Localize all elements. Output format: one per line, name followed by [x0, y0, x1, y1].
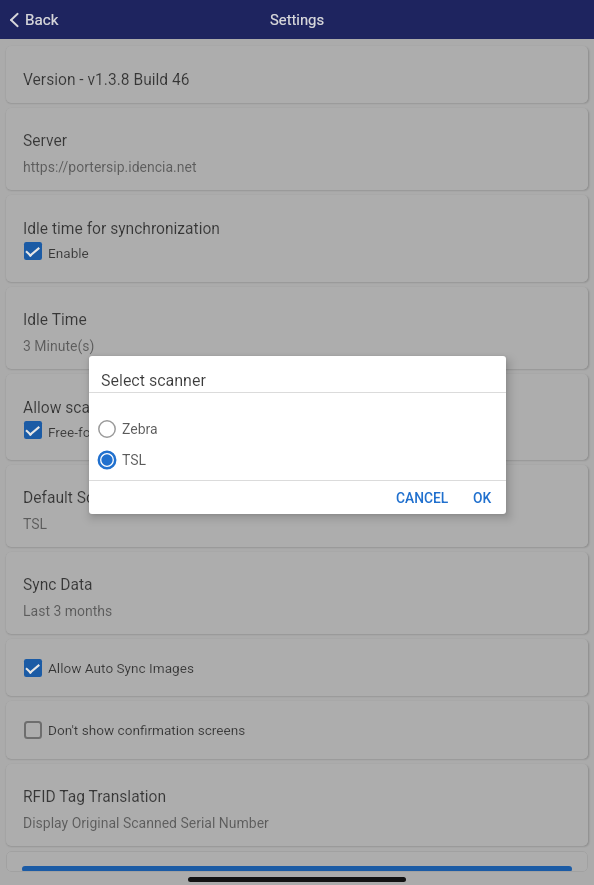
staticText: Display Original Scanned Serial Number	[23, 815, 269, 831]
button[interactable]: Checkbox	[6, 701, 588, 759]
staticText: OK	[473, 490, 492, 506]
staticText: Free-form scanning	[48, 424, 166, 440]
button[interactable]: Sync Data	[6, 552, 588, 634]
button[interactable]: Checkbox	[23, 242, 95, 260]
staticText: Sync Data	[23, 576, 93, 594]
button[interactable]: RFID Tag Translation	[6, 764, 588, 846]
button[interactable]: Checkbox	[23, 421, 172, 439]
button[interactable]: Idle time for synchronization	[6, 195, 588, 282]
button[interactable]: Checkbox	[6, 701, 588, 759]
staticText: Default Scanner	[23, 489, 134, 507]
other: Checkbox	[24, 421, 42, 439]
staticText: Allow scanning	[23, 399, 129, 417]
button[interactable]: Default Scanner	[6, 465, 588, 547]
button[interactable]: TSL	[89, 448, 506, 472]
staticText: CANCEL	[396, 490, 449, 506]
staticText: Idle time for synchronization	[23, 220, 220, 238]
button[interactable]: Zebra	[89, 417, 506, 441]
staticText: Enable	[48, 245, 89, 261]
button[interactable]: CANCEL	[388, 485, 457, 511]
staticText: Settings	[270, 11, 325, 28]
staticText: Select scanner	[101, 371, 206, 390]
staticText: Back	[25, 11, 59, 29]
button[interactable]: Checkbox	[6, 639, 588, 696]
button[interactable]: OK	[465, 485, 500, 511]
staticText: Zebra	[122, 421, 158, 437]
other: Checkbox	[24, 659, 42, 677]
button[interactable]	[22, 866, 572, 872]
staticText: https://portersip.idencia.net	[23, 159, 197, 175]
staticText: RFID Tag Translation	[23, 788, 167, 806]
button[interactable]: Back	[0, 0, 69, 39]
staticText: Server	[23, 132, 67, 150]
staticText: Idle Time	[23, 311, 87, 329]
button[interactable]: Checkbox	[6, 639, 588, 696]
other: Checkbox	[24, 721, 42, 739]
button[interactable]: Server	[6, 108, 588, 190]
staticText: Version - v1.3.8 Build 46	[23, 71, 190, 89]
staticText: TSL	[122, 452, 147, 468]
staticText: Last 3 months	[23, 603, 113, 619]
staticText: TSL	[23, 516, 48, 532]
button[interactable]: Allow scanning	[6, 374, 588, 460]
staticText: 3 Minute(s)	[23, 338, 95, 354]
staticText: Allow Auto Sync Images	[48, 660, 194, 676]
staticText: Don't show confirmation screens	[48, 722, 246, 738]
button[interactable]: Idle Time	[6, 287, 588, 369]
other: Checkbox	[24, 242, 42, 260]
button[interactable]: Version - v1.3.8 Build 46	[6, 46, 588, 103]
